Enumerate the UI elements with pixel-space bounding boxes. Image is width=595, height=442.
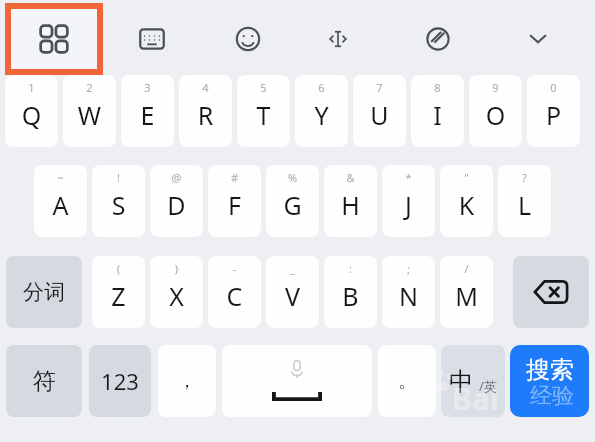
button[interactable]: _ xyxy=(266,256,319,328)
button[interactable]: 2 xyxy=(63,75,116,147)
staticText: 分词 xyxy=(23,279,65,305)
button[interactable]: 符 xyxy=(6,345,82,417)
button[interactable]: & xyxy=(324,165,377,237)
staticText: 6 xyxy=(295,80,348,94)
staticText: 3 xyxy=(121,80,174,94)
button[interactable]: 123 xyxy=(89,345,151,417)
staticText: ! xyxy=(92,170,145,184)
button[interactable]: Collapse keyboard xyxy=(514,15,562,63)
button[interactable]: 分词 xyxy=(6,256,82,328)
staticText: @ xyxy=(150,170,203,184)
button[interactable]: Space xyxy=(222,345,372,417)
staticText: E xyxy=(121,98,174,132)
staticText: M xyxy=(440,279,493,313)
staticText: 9 xyxy=(469,80,522,94)
staticText: Z xyxy=(92,279,145,313)
staticText: 搜索 xyxy=(526,355,574,385)
button[interactable]: Emoji xyxy=(224,15,272,63)
staticText: N xyxy=(382,279,435,313)
button[interactable]: * xyxy=(382,165,435,237)
staticText: 123 xyxy=(101,366,139,396)
button[interactable]: 8 xyxy=(411,75,464,147)
button[interactable]: % xyxy=(266,165,319,237)
staticText: 经验 xyxy=(530,382,574,410)
staticText: 8 xyxy=(411,80,464,94)
staticText: P xyxy=(527,98,580,132)
staticText: S xyxy=(92,188,145,222)
staticText: D xyxy=(150,188,203,222)
button[interactable]: ( xyxy=(92,256,145,328)
staticText: / xyxy=(440,261,493,275)
button[interactable]: Backspace xyxy=(513,256,589,328)
button[interactable]: 6 xyxy=(295,75,348,147)
staticText: 1 xyxy=(5,80,58,94)
staticText: 7 xyxy=(353,80,406,94)
staticText: 4 xyxy=(179,80,232,94)
staticText: K xyxy=(440,188,493,222)
button[interactable]: 9 xyxy=(469,75,522,147)
staticText: 5 xyxy=(237,80,290,94)
staticText: ; xyxy=(382,261,435,275)
staticText: J xyxy=(382,188,435,222)
staticText: U xyxy=(353,98,406,132)
button[interactable]: ? xyxy=(498,165,551,237)
staticText: Bai xyxy=(452,378,499,419)
staticText: # xyxy=(208,170,261,184)
button[interactable]: ) xyxy=(150,256,203,328)
staticText: T xyxy=(237,98,290,132)
staticText: Y xyxy=(295,98,348,132)
staticText: Q xyxy=(5,98,58,132)
staticText: 符 xyxy=(33,367,56,396)
staticText: O xyxy=(469,98,522,132)
button[interactable]: ! xyxy=(92,165,145,237)
staticText: /英 xyxy=(479,377,497,395)
staticText: ? xyxy=(498,170,551,184)
button[interactable]: # xyxy=(208,165,261,237)
button[interactable]: 5 xyxy=(237,75,290,147)
staticText: " xyxy=(440,170,493,184)
staticText: R xyxy=(179,98,232,132)
button[interactable]: / xyxy=(440,256,493,328)
button[interactable]: 0 xyxy=(527,75,580,147)
button[interactable]: ; xyxy=(382,256,435,328)
staticText: V xyxy=(266,279,319,313)
button[interactable]: Text editing xyxy=(314,15,362,63)
staticText: B xyxy=(324,279,377,313)
staticText: 0 xyxy=(527,80,580,94)
staticText: X xyxy=(150,279,203,313)
staticText: ) xyxy=(150,261,203,275)
button[interactable]: @ xyxy=(150,165,203,237)
button[interactable]: Apps xyxy=(8,6,100,72)
button[interactable]: 3 xyxy=(121,75,174,147)
button[interactable]: 4 xyxy=(179,75,232,147)
button[interactable]: 1 xyxy=(5,75,58,147)
staticText: I xyxy=(411,98,464,132)
button[interactable]: " xyxy=(440,165,493,237)
button[interactable]: : xyxy=(324,256,377,328)
button[interactable]: - xyxy=(208,256,261,328)
staticText: 2 xyxy=(63,80,116,94)
staticText: ~ xyxy=(34,170,87,184)
staticText: ， xyxy=(178,370,196,393)
staticText: W xyxy=(63,98,116,132)
staticText: 中 xyxy=(449,366,474,397)
button[interactable]: 搜索 xyxy=(510,345,589,417)
staticText: 。 xyxy=(398,370,416,393)
button[interactable]: Keyboard layout xyxy=(128,15,176,63)
button[interactable]: 7 xyxy=(353,75,406,147)
staticText: C xyxy=(208,279,261,313)
staticText: L xyxy=(498,188,551,222)
staticText: % xyxy=(266,170,319,184)
button[interactable]: Attachment xyxy=(414,15,462,63)
staticText: H xyxy=(324,188,377,222)
button[interactable]: Comma xyxy=(158,345,216,417)
button[interactable]: ~ xyxy=(34,165,87,237)
staticText: & xyxy=(324,170,377,184)
button[interactable]: 中 xyxy=(441,345,505,417)
staticText: _ xyxy=(266,261,319,275)
button[interactable]: Period xyxy=(378,345,436,417)
staticText: ( xyxy=(92,261,145,275)
staticText: A xyxy=(34,188,87,222)
staticText: G xyxy=(266,188,319,222)
staticText: - xyxy=(208,261,261,275)
